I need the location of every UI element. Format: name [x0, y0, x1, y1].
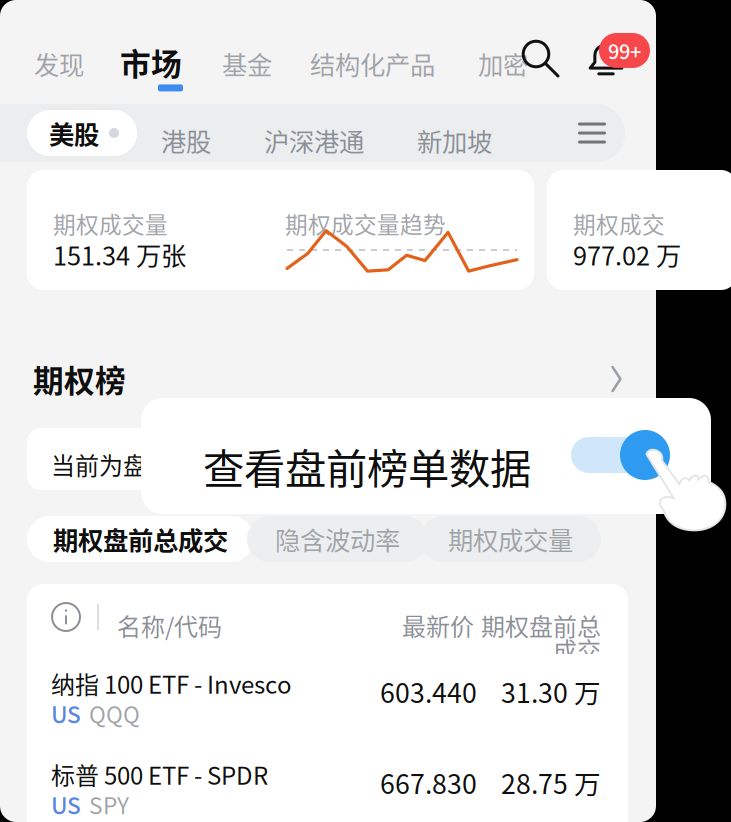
- staticText: 期权榜: [33, 357, 126, 401]
- staticText: 标普 500 ETF - SPDR: [51, 757, 268, 792]
- button[interactable]: 隐含波动率: [247, 516, 428, 562]
- staticText: 期权成交量: [53, 207, 168, 240]
- button[interactable]: 结构化产品: [310, 45, 435, 82]
- button[interactable]: 期权盘前总成交: [27, 516, 254, 562]
- staticText: 结构化产品: [310, 45, 435, 82]
- staticText: 查看盘前榜单数据: [203, 436, 531, 496]
- staticText: 977.02 万: [573, 236, 681, 273]
- staticText: 当前为盘前时段: [51, 447, 219, 482]
- staticText: 发现: [34, 45, 84, 82]
- staticText: 最新价: [402, 608, 474, 643]
- staticText: US: [51, 788, 81, 821]
- staticText: QQQ: [89, 697, 140, 730]
- button[interactable]: 期权榜: [0, 348, 656, 410]
- staticText: 151.34 万张: [53, 236, 186, 273]
- button[interactable]: [27, 654, 628, 742]
- staticText: 99+: [608, 36, 641, 65]
- button[interactable]: 美股: [27, 110, 137, 156]
- button[interactable]: 市场: [120, 40, 183, 91]
- staticText: 603.440: [380, 672, 477, 711]
- staticText: 期权成交量: [448, 521, 573, 557]
- button[interactable]: 新加坡: [417, 122, 492, 159]
- staticText: 成交: [553, 632, 601, 667]
- button[interactable]: Search: [520, 38, 560, 78]
- button[interactable]: 基金: [222, 45, 272, 82]
- button[interactable]: 港股: [161, 122, 211, 159]
- button[interactable]: Toggle pre-market ranking data: [571, 437, 647, 473]
- staticText: 名称/代码: [117, 608, 222, 643]
- staticText: SPY: [89, 788, 129, 821]
- button[interactable]: More markets: [570, 111, 614, 155]
- button[interactable]: 发现: [34, 45, 84, 82]
- staticText: 纳指 100 ETF - Invesco: [51, 666, 292, 701]
- staticText: 美股: [49, 115, 99, 151]
- button[interactable]: [27, 745, 628, 822]
- staticText: 港股: [161, 122, 211, 159]
- staticText: 期权成交: [573, 207, 665, 240]
- staticText: 期权盘前总: [481, 608, 601, 643]
- staticText: 期权成交量趋势: [285, 207, 446, 240]
- button[interactable]: 加密: [478, 45, 528, 82]
- staticText: 期权盘前总成交: [53, 521, 228, 557]
- staticText: 加密: [478, 45, 528, 82]
- button[interactable]: 沪深港通: [264, 122, 364, 159]
- button[interactable]: Notifications: [588, 40, 624, 76]
- staticText: 31.30 万: [501, 672, 601, 711]
- staticText: 基金: [222, 45, 272, 82]
- staticText: 新加坡: [417, 122, 492, 159]
- staticText: 667.830: [380, 763, 477, 802]
- staticText: 市场: [120, 40, 182, 84]
- button[interactable]: 期权成交量: [420, 516, 601, 562]
- staticText: 沪深港通: [264, 122, 364, 159]
- staticText: US: [51, 697, 81, 730]
- staticText: 隐含波动率: [275, 521, 400, 557]
- staticText: 28.75 万: [501, 763, 601, 802]
